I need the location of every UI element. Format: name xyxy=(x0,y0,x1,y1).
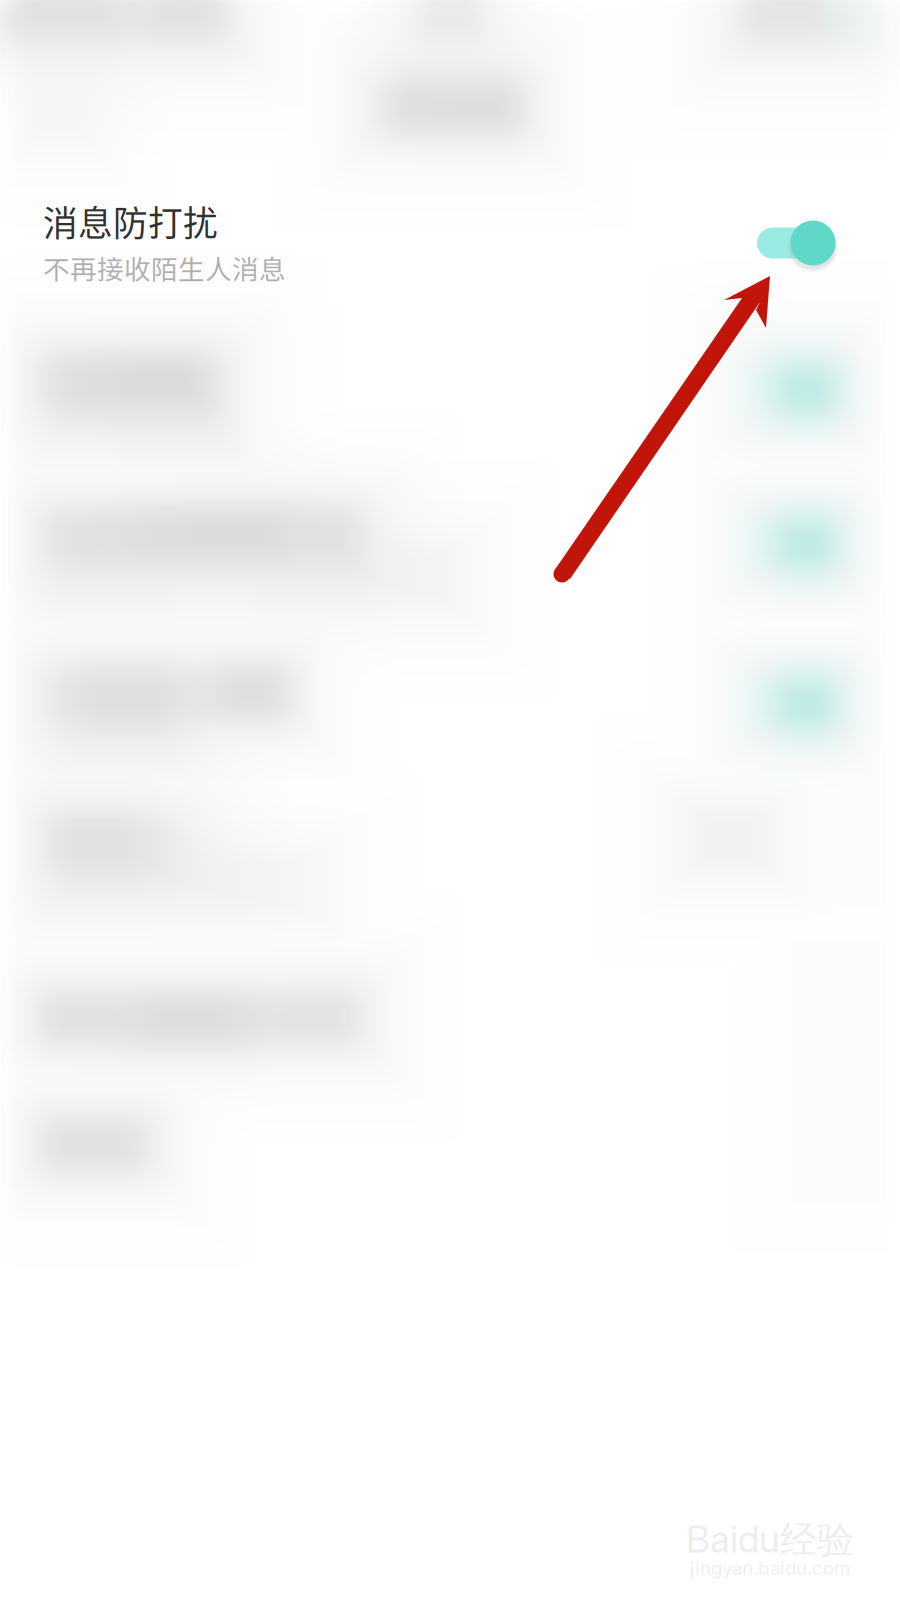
staticText: jingyan.baidu.com xyxy=(690,1557,850,1579)
staticText: 十条朋友圈 xyxy=(43,718,178,757)
staticText: 黑名单 xyxy=(43,1118,148,1168)
staticText: 仅在无线局域网下载 xyxy=(43,506,358,556)
staticText: 字体大小 xyxy=(43,812,183,862)
staticText: 聊天记录备份与迁移 xyxy=(43,992,358,1042)
staticText: 调整聊天界面字体大小 xyxy=(43,864,313,903)
staticText: Baidu经验 xyxy=(686,1516,854,1564)
button[interactable]: 消息防打扰 xyxy=(0,0,900,1600)
staticText: 消息设置 xyxy=(380,80,520,130)
staticText: 接收新消息提醒 xyxy=(43,404,232,443)
staticText: 移动网络下不自动下载图片和视频 xyxy=(43,558,448,597)
staticText: 允许陌生人查看 xyxy=(43,666,288,716)
staticText: 不再接收陌生人消息 xyxy=(43,248,286,287)
staticText: 新消息通知 xyxy=(43,352,218,402)
staticText: 消息防打扰 xyxy=(43,196,218,246)
